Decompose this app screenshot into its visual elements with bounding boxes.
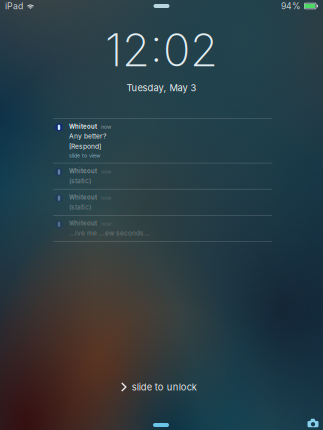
- staticText: now: [101, 124, 111, 130]
- staticText: Whiteout: [69, 194, 97, 201]
- staticText: 12:02: [105, 22, 218, 77]
- staticText: Whiteout: [69, 220, 97, 227]
- staticText: Tuesday, May 3: [126, 82, 196, 94]
- staticText: iPad: [5, 1, 23, 11]
- staticText: ...ive me ...ew seconds...: [69, 229, 150, 237]
- staticText: Whiteout: [69, 167, 97, 175]
- button[interactable]: Camera: [304, 416, 321, 430]
- staticText: [Respond]: [69, 142, 101, 150]
- button[interactable]: Whiteout: [53, 163, 272, 189]
- button[interactable]: Whiteout: [53, 190, 272, 215]
- staticText: now: [101, 194, 111, 201]
- staticText: 94%: [281, 1, 301, 11]
- staticText: Whiteout: [69, 123, 97, 130]
- button[interactable]: Whiteout: [53, 119, 272, 163]
- staticText: slide to view: [69, 152, 100, 159]
- staticText: now: [101, 221, 111, 227]
- staticText: (static): [69, 203, 91, 211]
- staticText: Any better?: [69, 132, 106, 140]
- staticText: (static): [69, 177, 91, 185]
- staticText: now: [101, 168, 111, 175]
- button[interactable]: Whiteout: [53, 216, 272, 241]
- staticText: slide to unlock: [132, 381, 197, 393]
